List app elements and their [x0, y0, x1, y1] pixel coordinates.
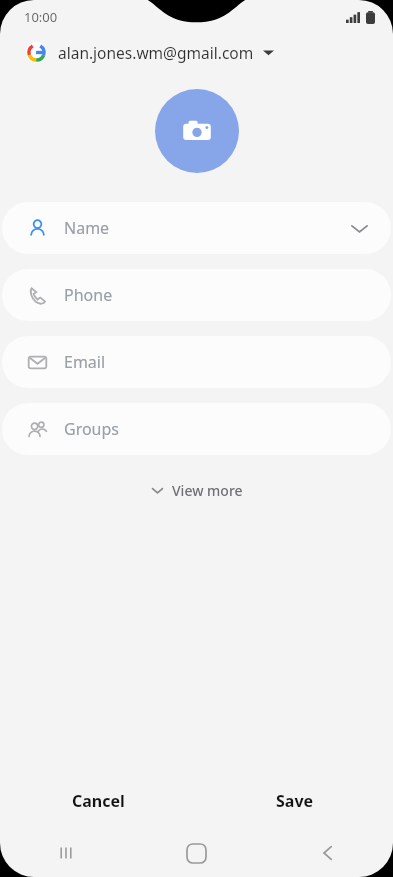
button[interactable]: Home [131, 829, 262, 877]
button[interactable]: Add contact photo [155, 89, 239, 173]
button[interactable]: View more [137, 474, 257, 507]
staticText: View more [172, 481, 243, 500]
staticText: Email [64, 351, 106, 373]
staticText: Phone [64, 284, 113, 306]
button[interactable]: Recents [0, 829, 131, 877]
button[interactable]: Phone [2, 269, 391, 321]
staticText: 10:00 [24, 8, 58, 26]
staticText: Groups [64, 418, 120, 440]
button[interactable]: Back [262, 829, 393, 877]
button[interactable]: Cancel [0, 773, 196, 829]
staticText: alan.jones.wm@gmail.com [58, 42, 254, 63]
button[interactable]: Email [2, 336, 391, 388]
button[interactable]: Groups [2, 403, 391, 455]
staticText: Name [64, 217, 110, 239]
button[interactable]: Name [2, 202, 391, 254]
button[interactable]: alan.jones.wm@gmail.com [0, 34, 393, 70]
staticText: Save [276, 790, 314, 812]
staticText: Cancel [72, 790, 125, 812]
button[interactable]: Save [196, 773, 393, 829]
